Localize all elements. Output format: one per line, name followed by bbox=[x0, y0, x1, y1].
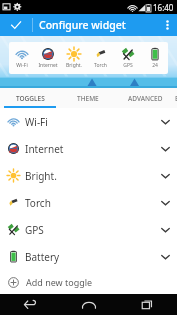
staticText: Wi-Fi bbox=[25, 115, 48, 129]
staticText: Bright. bbox=[25, 169, 57, 183]
button[interactable]: TOGGLES bbox=[0, 88, 60, 108]
staticText: Internet bbox=[25, 142, 64, 156]
button[interactable]: Expand GPS bbox=[153, 216, 177, 243]
button[interactable]: Expand Bright. bbox=[153, 162, 177, 189]
button[interactable]: Battery bbox=[0, 243, 177, 270]
button[interactable]: Home bbox=[59, 294, 118, 315]
button[interactable]: More options bbox=[157, 14, 177, 36]
button[interactable]: Back bbox=[0, 294, 59, 315]
button[interactable]: Internet bbox=[35, 42, 61, 74]
staticText: Battery bbox=[25, 250, 60, 264]
button[interactable]: 24 bbox=[141, 42, 168, 74]
staticText: GPS bbox=[123, 62, 133, 69]
button[interactable]: Wi-Fi bbox=[0, 108, 177, 135]
button[interactable]: Done bbox=[0, 14, 32, 36]
button[interactable]: THEME bbox=[60, 88, 115, 108]
button[interactable]: Wi-Fi bbox=[9, 42, 35, 74]
staticText: Configure widget bbox=[39, 18, 126, 32]
button[interactable]: Expand Wi-Fi bbox=[153, 108, 177, 135]
staticText: Add new toggle bbox=[26, 276, 93, 288]
button[interactable]: Internet bbox=[0, 135, 177, 162]
staticText: 16:40 bbox=[153, 2, 174, 13]
button[interactable]: Torch bbox=[0, 189, 177, 216]
button[interactable]: E bbox=[175, 88, 177, 108]
button[interactable]: Recent apps bbox=[118, 294, 177, 315]
button[interactable]: Add new toggle bbox=[0, 270, 177, 294]
staticText: THEME bbox=[77, 94, 99, 103]
button[interactable]: GPS bbox=[114, 42, 141, 74]
button[interactable]: Expand Battery bbox=[153, 243, 177, 270]
button[interactable]: ADVANCED bbox=[115, 88, 175, 108]
button[interactable]: Wi-Fi bbox=[9, 42, 168, 74]
button[interactable]: GPS bbox=[0, 216, 177, 243]
staticText: ADVANCED bbox=[128, 94, 163, 103]
staticText: 24 bbox=[152, 62, 158, 69]
staticText: Bright. bbox=[66, 62, 82, 69]
staticText: Wi-Fi bbox=[16, 62, 28, 69]
button[interactable]: Expand Torch bbox=[153, 189, 177, 216]
button[interactable]: Torch bbox=[87, 42, 114, 74]
staticText: Internet bbox=[38, 62, 58, 69]
staticText: Torch bbox=[25, 196, 51, 210]
staticText: Torch bbox=[94, 62, 107, 69]
staticText: E bbox=[175, 94, 177, 103]
button[interactable]: Expand Internet bbox=[153, 135, 177, 162]
button[interactable]: Bright. bbox=[0, 162, 177, 189]
staticText: GPS bbox=[25, 223, 44, 237]
button[interactable]: Bright. bbox=[61, 42, 87, 74]
staticText: TOGGLES bbox=[16, 94, 45, 103]
